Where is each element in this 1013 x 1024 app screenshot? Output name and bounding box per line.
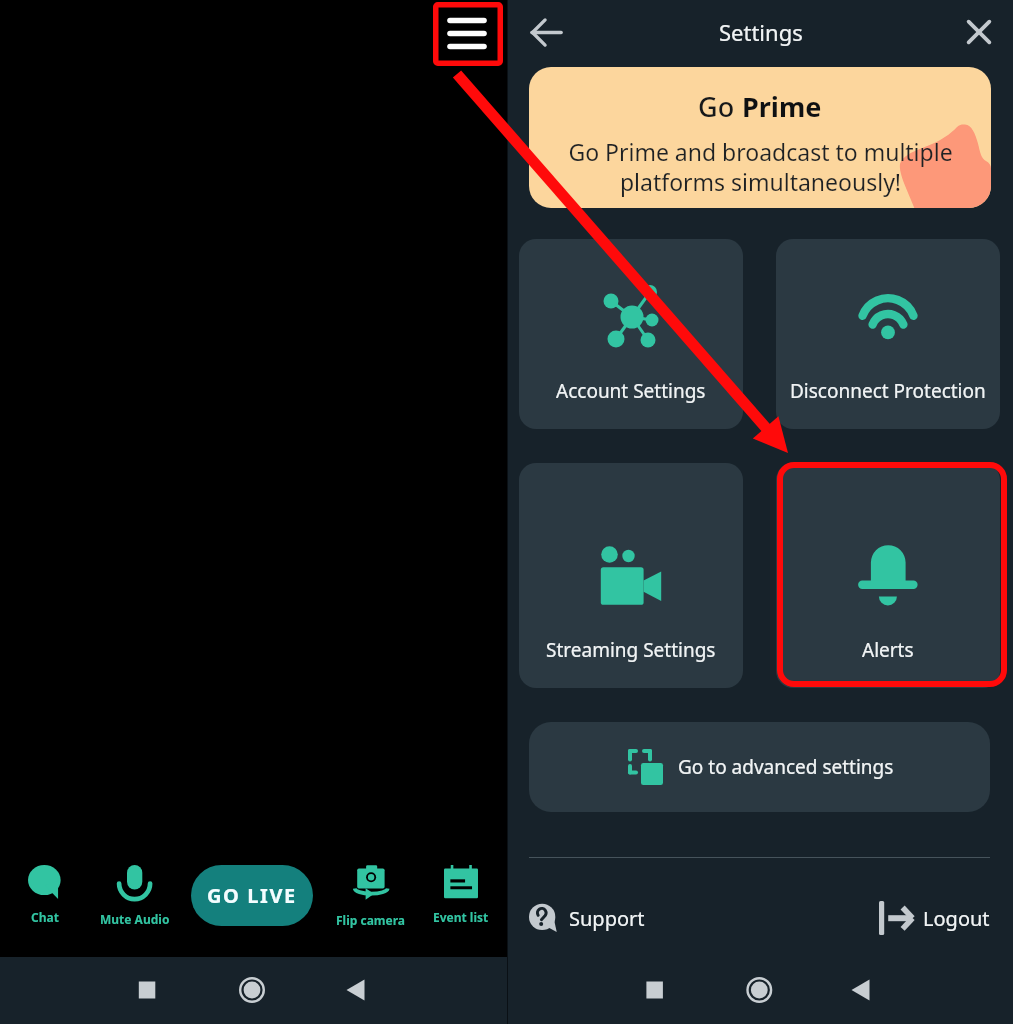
staticText: Go Prime and broadcast to multiple platf… (568, 136, 953, 198)
button[interactable]: Go (529, 67, 991, 208)
staticText: Mute Audio (100, 911, 170, 927)
staticText: Go (698, 88, 742, 125)
button[interactable]: Flip camera (325, 858, 417, 928)
staticText: GO LIVE (207, 882, 297, 909)
button[interactable]: GO LIVE (191, 865, 313, 926)
button[interactable]: Back (524, 10, 568, 54)
button[interactable]: Back (834, 962, 890, 1018)
button[interactable]: Event list (415, 858, 507, 928)
staticText: Alerts (862, 637, 914, 663)
staticText: Prime (742, 88, 822, 125)
button[interactable]: Back (329, 963, 385, 1019)
button[interactable]: Chat (0, 858, 91, 928)
staticText: Account Settings (556, 378, 706, 404)
staticText: Event list (433, 909, 489, 925)
staticText: Streaming Settings (546, 637, 716, 663)
button[interactable]: Disconnect Protection (776, 239, 1000, 429)
button[interactable]: Logout (879, 901, 990, 935)
button[interactable]: Close (957, 10, 1001, 54)
staticText: Flip camera (336, 912, 406, 928)
button[interactable]: Support (529, 904, 645, 932)
staticText: Go to advanced settings (678, 754, 894, 780)
staticText: Support (569, 905, 645, 932)
button[interactable]: Account Settings (519, 239, 743, 429)
button[interactable]: Recent apps (627, 962, 683, 1018)
button[interactable]: Mute Audio (89, 858, 181, 928)
button[interactable]: Streaming Settings (519, 463, 743, 688)
button[interactable]: Alerts (776, 463, 1000, 688)
staticText: Logout (923, 905, 990, 932)
button[interactable]: Recent apps (119, 963, 175, 1019)
button[interactable]: Menu (435, 3, 499, 67)
staticText: Disconnect Protection (790, 378, 986, 404)
staticText: Chat (31, 909, 59, 925)
button[interactable]: Go to advanced settings (529, 722, 990, 812)
staticText: Settings (719, 17, 803, 47)
button[interactable]: Home (731, 962, 787, 1018)
button[interactable]: Home (224, 963, 280, 1019)
